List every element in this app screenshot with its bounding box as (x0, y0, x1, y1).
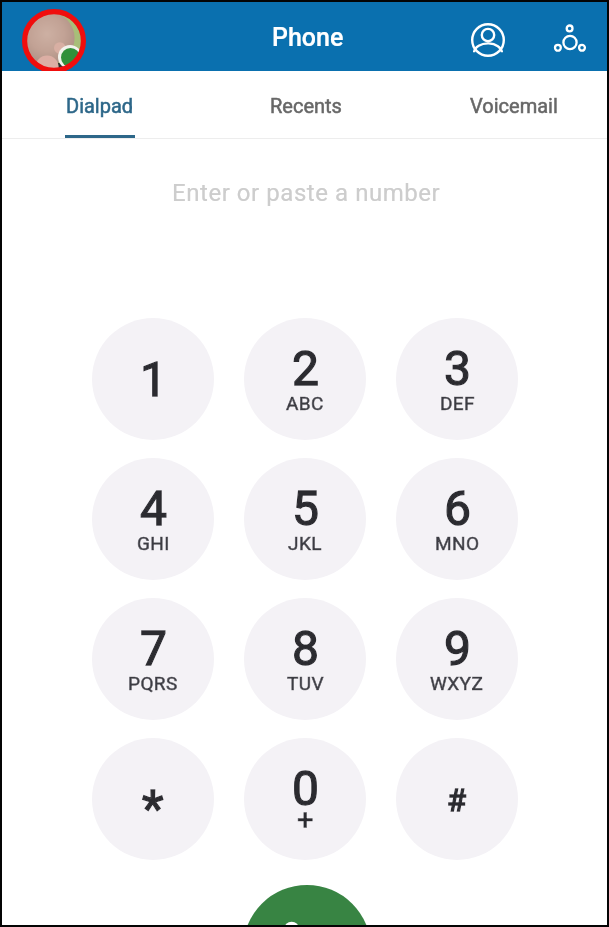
button[interactable]: Dialpad (0, 71, 201, 138)
staticText: Enter or paste a number (172, 179, 441, 207)
staticText: Dialpad (66, 94, 134, 117)
staticText: 5 (292, 480, 319, 536)
button[interactable]: 8 (244, 598, 366, 720)
button[interactable]: Profile (22, 9, 86, 73)
button[interactable]: 2 (244, 318, 366, 440)
button[interactable]: Recents (205, 71, 407, 138)
button[interactable]: 5 (244, 458, 366, 580)
staticText: * (142, 780, 164, 839)
button[interactable]: 4 (92, 458, 214, 580)
staticText: Phone (272, 23, 344, 52)
staticText: DEF (440, 392, 475, 414)
button[interactable]: Voicemail (413, 71, 609, 138)
staticText: JKL (288, 532, 322, 554)
staticText: + (297, 803, 314, 837)
staticText: Voicemail (470, 94, 558, 117)
staticText: WXYZ (430, 672, 484, 694)
staticText: DEF (440, 392, 475, 414)
button[interactable]: Account (457, 9, 518, 70)
staticText: 2 (292, 340, 319, 396)
staticText: ABC (286, 392, 324, 414)
button[interactable]: 3 (396, 318, 518, 440)
staticText: Dialpad (66, 94, 134, 117)
staticText: ABC (286, 392, 324, 414)
button[interactable]: Call (243, 885, 371, 927)
staticText: 9 (444, 620, 471, 676)
staticText: # (447, 782, 467, 818)
staticText: 1 (140, 351, 167, 407)
staticText: 8 (292, 620, 319, 676)
staticText: Voicemail (470, 94, 558, 117)
staticText: Recents (270, 94, 342, 117)
staticText: 5 (292, 480, 319, 536)
staticText: 0 (292, 760, 319, 816)
staticText: Recents (270, 94, 342, 117)
staticText: 4 (140, 480, 167, 536)
staticText: 2 (292, 340, 319, 396)
staticText: 6 (444, 480, 471, 536)
staticText: TUV (287, 672, 324, 694)
staticText: 4 (140, 480, 167, 536)
staticText: MNO (435, 532, 480, 554)
button[interactable]: 0 (244, 738, 366, 860)
staticText: JKL (288, 532, 322, 554)
staticText: 3 (444, 340, 471, 396)
staticText: + (297, 803, 314, 837)
staticText: TUV (287, 672, 324, 694)
staticText: # (447, 782, 467, 818)
staticText: 0 (292, 760, 319, 816)
staticText: PQRS (128, 672, 178, 694)
staticText: 1 (140, 351, 167, 407)
staticText: GHI (137, 532, 170, 554)
staticText: GHI (137, 532, 170, 554)
staticText: 9 (444, 620, 471, 676)
staticText: * (142, 780, 164, 839)
staticText: 8 (292, 620, 319, 676)
button[interactable]: 1 (92, 318, 214, 440)
staticText: PQRS (128, 672, 178, 694)
staticText: 6 (444, 480, 471, 536)
button[interactable]: # (396, 738, 518, 860)
staticText: 7 (140, 620, 167, 676)
button[interactable]: * (92, 738, 214, 860)
staticText: 7 (140, 620, 167, 676)
button[interactable]: 6 (396, 458, 518, 580)
button[interactable]: 9 (396, 598, 518, 720)
button[interactable]: 7 (92, 598, 214, 720)
staticText: MNO (435, 532, 480, 554)
staticText: 3 (444, 340, 471, 396)
staticText: WXYZ (430, 672, 484, 694)
button[interactable]: Share contacts (539, 9, 600, 70)
